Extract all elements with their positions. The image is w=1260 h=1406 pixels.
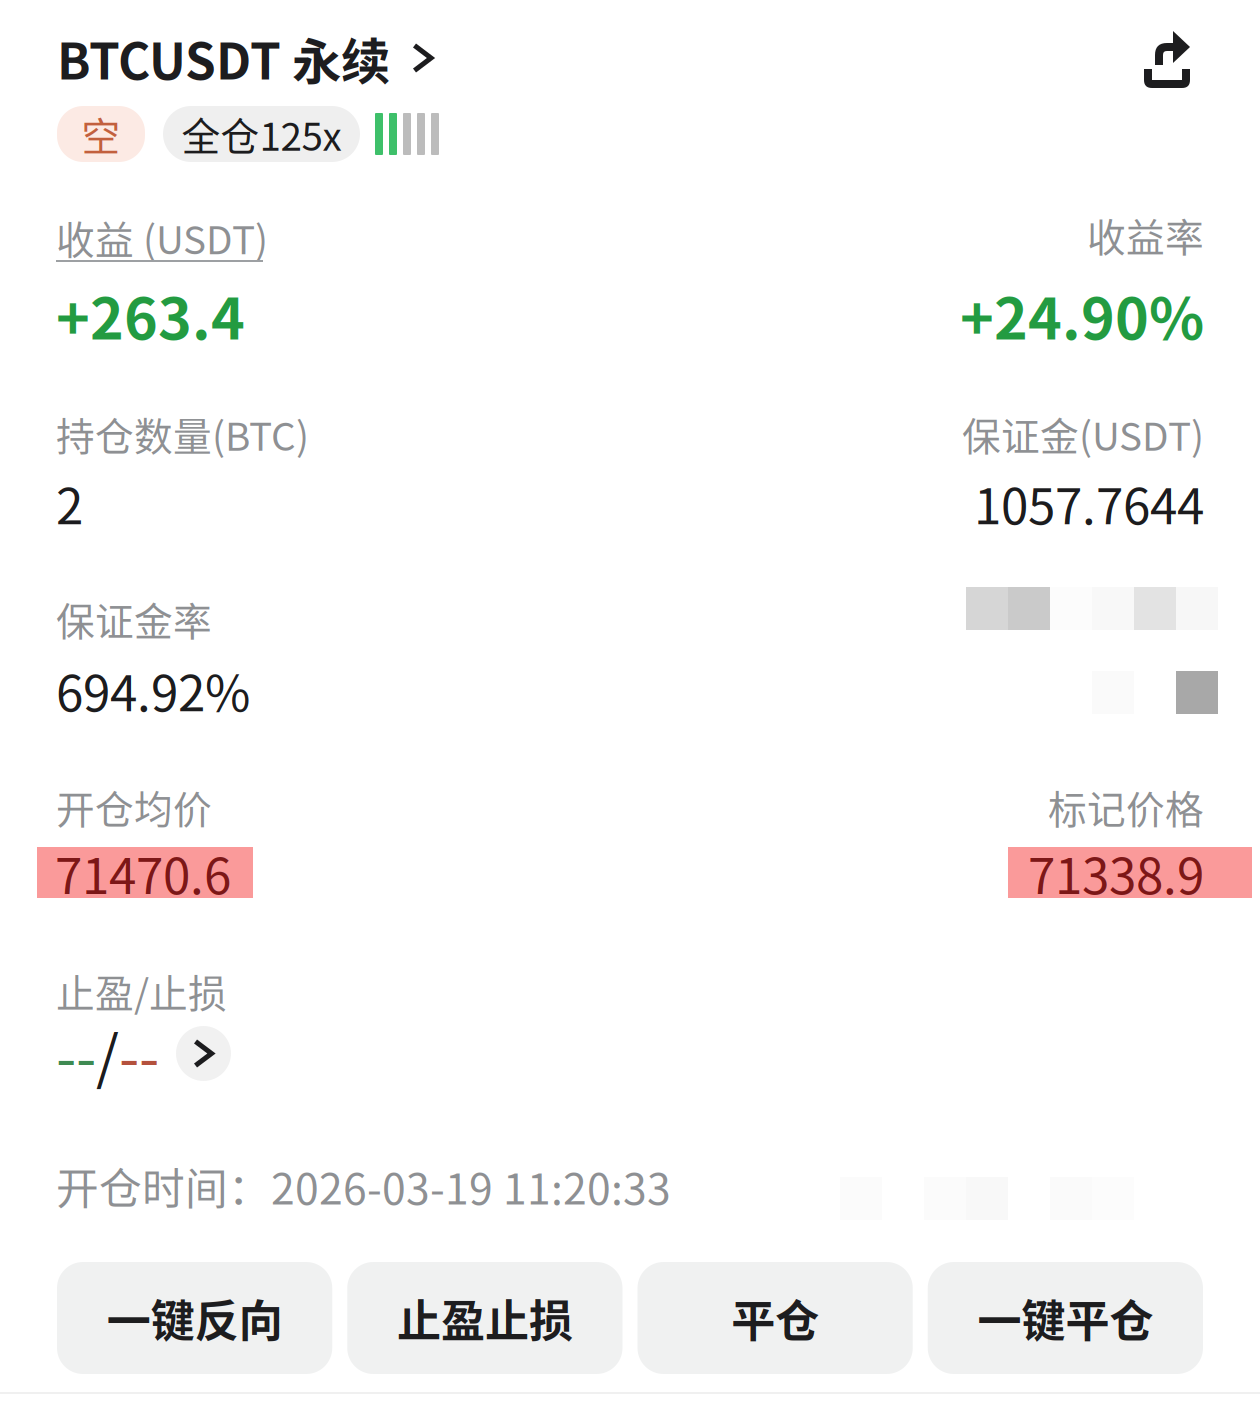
staticText: 71470.6	[55, 837, 231, 908]
staticText: 保证金(USDT)	[962, 406, 1204, 462]
staticText: 止盈/止损	[56, 963, 227, 1019]
button[interactable]: 止盈止损	[347, 1262, 622, 1374]
staticText: 保证金率	[56, 591, 212, 647]
button[interactable]: 全仓125x	[163, 106, 360, 162]
staticText: 一键平仓	[977, 1286, 1153, 1350]
staticText: 标记价格	[1048, 779, 1204, 835]
button[interactable]: --	[56, 1026, 231, 1081]
button[interactable]: 空	[57, 106, 145, 162]
staticText: BTCUSDT 永续	[57, 22, 390, 94]
staticText: 持仓数量(BTC)	[56, 406, 309, 462]
staticText: 1057.7644	[974, 467, 1204, 538]
button[interactable]: 一键反向	[57, 1262, 332, 1374]
staticText: 空	[81, 106, 120, 162]
staticText: --	[119, 1011, 159, 1096]
button[interactable]: 一键平仓	[928, 1262, 1203, 1374]
button[interactable]: Share	[1153, 30, 1203, 86]
staticText: 全仓125x	[181, 106, 341, 162]
staticText: 平仓	[731, 1286, 819, 1350]
button[interactable]: 平仓	[637, 1262, 913, 1374]
button[interactable]: BTCUSDT 永续	[57, 34, 433, 82]
staticText: --	[56, 1011, 96, 1096]
staticText: 71338.9	[1028, 837, 1204, 908]
staticText: 收益率	[1087, 207, 1204, 263]
staticText: 止盈止损	[397, 1286, 573, 1350]
staticText: +263.4	[56, 273, 245, 356]
staticText: /	[96, 1011, 119, 1096]
staticText: 收益 (USDT)	[56, 209, 268, 265]
staticText: +24.90%	[960, 273, 1204, 356]
staticText: 694.92%	[56, 654, 250, 725]
staticText: 开仓均价	[56, 779, 212, 835]
staticText: 2	[56, 467, 83, 538]
staticText: 一键反向	[107, 1286, 283, 1350]
staticText: 开仓时间：2026-03-19 11:20:33	[56, 1155, 671, 1217]
